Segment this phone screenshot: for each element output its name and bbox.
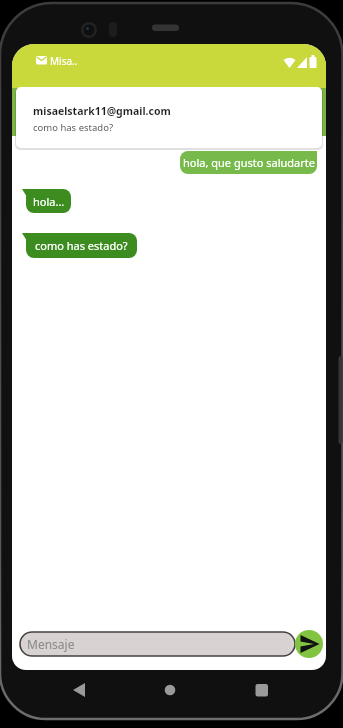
button[interactable] bbox=[150, 676, 190, 702]
button[interactable] bbox=[60, 676, 100, 702]
button[interactable]: hola, que gusto saludarte bbox=[180, 151, 317, 174]
staticText: hola, que gusto saludarte bbox=[183, 155, 315, 170]
staticText: Mensaje bbox=[27, 636, 75, 652]
staticText: Misa.. bbox=[50, 54, 78, 68]
button[interactable]: Mensaje bbox=[20, 632, 295, 656]
button[interactable] bbox=[245, 676, 285, 702]
staticText: hola... bbox=[33, 194, 65, 209]
staticText: como has estado? bbox=[33, 121, 114, 134]
button[interactable]: hola... bbox=[26, 189, 71, 213]
button[interactable]: misaelstark11@gmail.com bbox=[16, 87, 322, 148]
staticText: misaelstark11@gmail.com bbox=[33, 104, 171, 118]
button[interactable]: como has estado? bbox=[26, 233, 137, 258]
staticText: como has estado? bbox=[35, 238, 128, 253]
button[interactable] bbox=[295, 630, 323, 658]
